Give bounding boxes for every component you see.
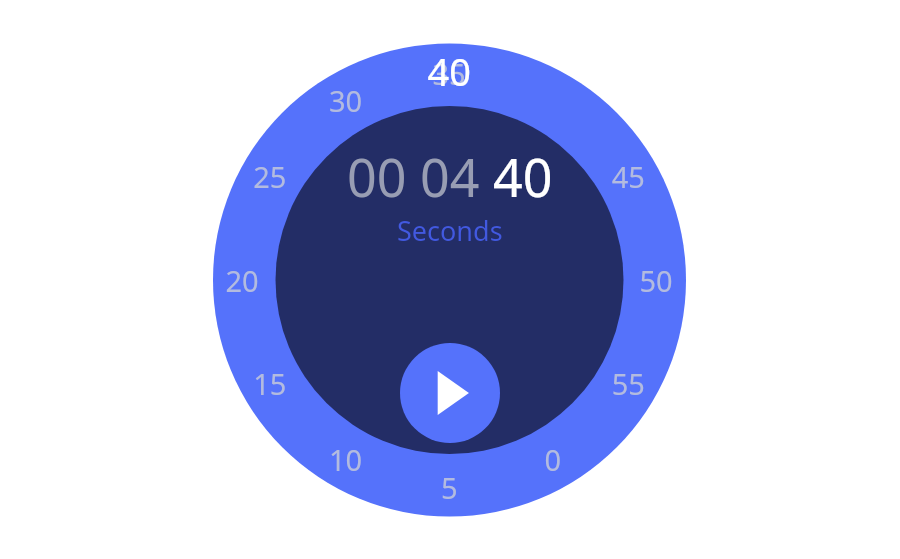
staticText: 00 04 40 — [347, 141, 553, 212]
button[interactable]: Start timer — [400, 343, 500, 443]
staticText: Seconds — [397, 212, 503, 249]
